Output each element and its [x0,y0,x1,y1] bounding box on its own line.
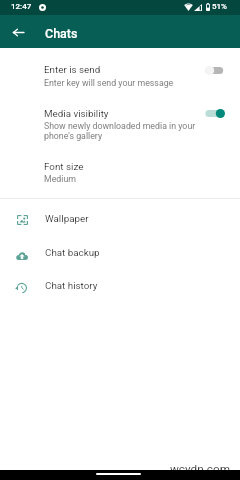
staticText: Media visibility [44,108,109,119]
staticText: Chat backup [45,247,100,258]
button[interactable]: Font size [0,153,240,186]
button[interactable]: Off [202,61,228,79]
button[interactable]: Wallpaper [0,207,240,240]
button[interactable]: Enter is send [0,56,240,91]
staticText: 12:47 [11,2,32,11]
staticText: 51% [212,2,227,11]
staticText: Show newly downloaded media in your phon… [44,121,196,141]
button[interactable]: Media visibility [0,100,240,145]
button[interactable]: On [202,104,228,122]
staticText: Chat history [45,280,98,291]
staticText: Enter is send [44,64,101,75]
staticText: Enter key will send your message [44,78,174,88]
staticText: Chats [45,26,78,41]
staticText: Wallpaper [45,213,89,224]
staticText: Medium [44,174,77,184]
button[interactable]: Back [6,20,30,44]
button[interactable]: Chat history [0,274,240,307]
button[interactable]: Chat backup [0,241,240,274]
staticText: Font size [44,161,84,172]
staticText: wcydn.com [170,462,231,476]
